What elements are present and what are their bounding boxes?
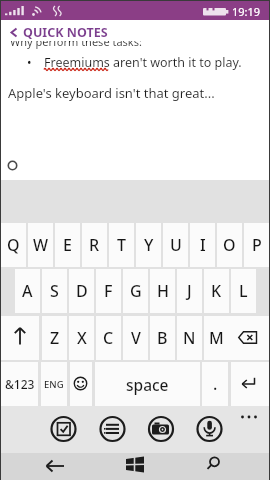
staticText: U bbox=[170, 234, 182, 256]
button[interactable]: O bbox=[217, 223, 242, 267]
staticText: M bbox=[209, 327, 224, 349]
button[interactable] bbox=[97, 413, 128, 444]
staticText: P bbox=[252, 234, 262, 256]
staticText: 19:19 bbox=[232, 4, 261, 19]
staticText: V bbox=[131, 327, 141, 349]
staticText: Y bbox=[144, 234, 154, 256]
button[interactable] bbox=[122, 454, 148, 478]
button[interactable]: D bbox=[69, 269, 94, 313]
button[interactable]: B bbox=[150, 316, 175, 360]
button[interactable]: P bbox=[244, 223, 269, 267]
staticText: K bbox=[211, 280, 222, 302]
button[interactable]: . bbox=[202, 362, 228, 406]
button[interactable]: M bbox=[204, 316, 229, 360]
staticText: E bbox=[63, 234, 72, 256]
staticText: ENG bbox=[44, 378, 64, 391]
staticText: QUICK NOTES bbox=[23, 24, 108, 41]
button[interactable]: ENG bbox=[41, 362, 67, 406]
staticText: B bbox=[157, 327, 168, 349]
button[interactable]: F bbox=[96, 269, 121, 313]
staticText: F bbox=[104, 280, 113, 302]
button[interactable] bbox=[70, 362, 92, 406]
button[interactable]: N bbox=[177, 316, 202, 360]
staticText: Apple's keyboard isn't that great... bbox=[8, 84, 215, 102]
button[interactable]: L bbox=[231, 269, 256, 313]
button[interactable]: V bbox=[123, 316, 148, 360]
button[interactable]: space bbox=[95, 362, 200, 406]
button[interactable]: QUICK NOTES bbox=[9, 24, 108, 41]
button[interactable]: T bbox=[109, 223, 134, 267]
staticText: H bbox=[157, 280, 169, 302]
button[interactable] bbox=[41, 455, 69, 479]
staticText: G bbox=[130, 280, 142, 302]
staticText: O bbox=[223, 234, 236, 256]
button[interactable]: H bbox=[150, 269, 175, 313]
staticText: R bbox=[89, 234, 100, 256]
staticText: J bbox=[187, 280, 192, 302]
button[interactable]: A bbox=[15, 269, 40, 313]
button[interactable]: &123 bbox=[1, 362, 38, 406]
button[interactable] bbox=[236, 408, 264, 426]
staticText: S bbox=[50, 280, 59, 302]
button[interactable]: Y bbox=[136, 223, 161, 267]
button[interactable] bbox=[228, 316, 269, 360]
button[interactable] bbox=[48, 413, 79, 444]
button[interactable]: K bbox=[204, 269, 229, 313]
button[interactable] bbox=[201, 455, 227, 479]
button[interactable] bbox=[231, 362, 269, 406]
staticText: T bbox=[117, 234, 126, 256]
button[interactable]: R bbox=[82, 223, 107, 267]
button[interactable]: U bbox=[163, 223, 188, 267]
staticText: . bbox=[213, 373, 218, 395]
button[interactable]: Z bbox=[42, 316, 67, 360]
button[interactable]: Q bbox=[1, 223, 26, 267]
button[interactable]: C bbox=[96, 316, 121, 360]
staticText: X bbox=[77, 327, 87, 349]
staticText: Z bbox=[50, 327, 60, 349]
staticText: L bbox=[239, 280, 248, 302]
staticText: W bbox=[33, 234, 49, 256]
staticText: Q bbox=[7, 234, 20, 256]
staticText: Why perform these tasks: bbox=[10, 34, 142, 49]
button[interactable]: X bbox=[69, 316, 94, 360]
staticText: C bbox=[103, 327, 114, 349]
staticText: space bbox=[126, 374, 169, 395]
button[interactable]: J bbox=[177, 269, 202, 313]
button[interactable]: I bbox=[190, 223, 215, 267]
staticText: I bbox=[200, 234, 206, 256]
button[interactable]: E bbox=[55, 223, 80, 267]
staticText: D bbox=[76, 280, 88, 302]
staticText: Freemiums aren't worth it to play. bbox=[44, 54, 242, 71]
staticText: A bbox=[22, 280, 33, 302]
staticText: &123 bbox=[5, 376, 35, 392]
button[interactable]: S bbox=[42, 269, 67, 313]
button[interactable]: G bbox=[123, 269, 148, 313]
staticText: • bbox=[27, 54, 32, 70]
button[interactable] bbox=[145, 413, 176, 444]
button[interactable] bbox=[194, 413, 225, 444]
button[interactable]: W bbox=[28, 223, 53, 267]
staticText: N bbox=[183, 327, 196, 349]
button[interactable] bbox=[1, 316, 39, 360]
